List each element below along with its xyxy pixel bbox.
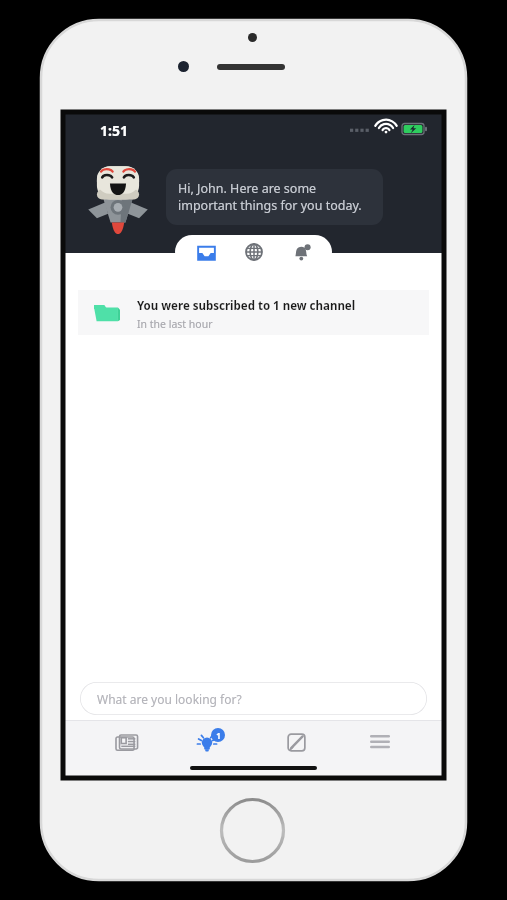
staticText: What are you looking for? [97,691,242,707]
staticText: 1:51 [100,121,128,140]
button[interactable]: Notifications [284,235,318,269]
button[interactable]: You were subscribed to 1 new channel [78,290,429,335]
button[interactable]: Hi, John. Here are some important things… [166,169,383,225]
button[interactable]: News [105,720,149,764]
button[interactable]: Discover [237,235,271,269]
button[interactable]: Insights [189,720,233,764]
staticText: Hi, John. Here are some important things… [178,180,371,214]
button[interactable]: Compose [274,720,318,764]
button[interactable]: Menu [358,720,402,764]
staticText: You were subscribed to 1 new channel [137,298,356,314]
staticText: In the last hour [137,317,213,331]
button[interactable]: What are you looking for? [80,682,427,715]
staticText: 1 [216,730,221,741]
button[interactable]: Inbox [189,235,223,269]
